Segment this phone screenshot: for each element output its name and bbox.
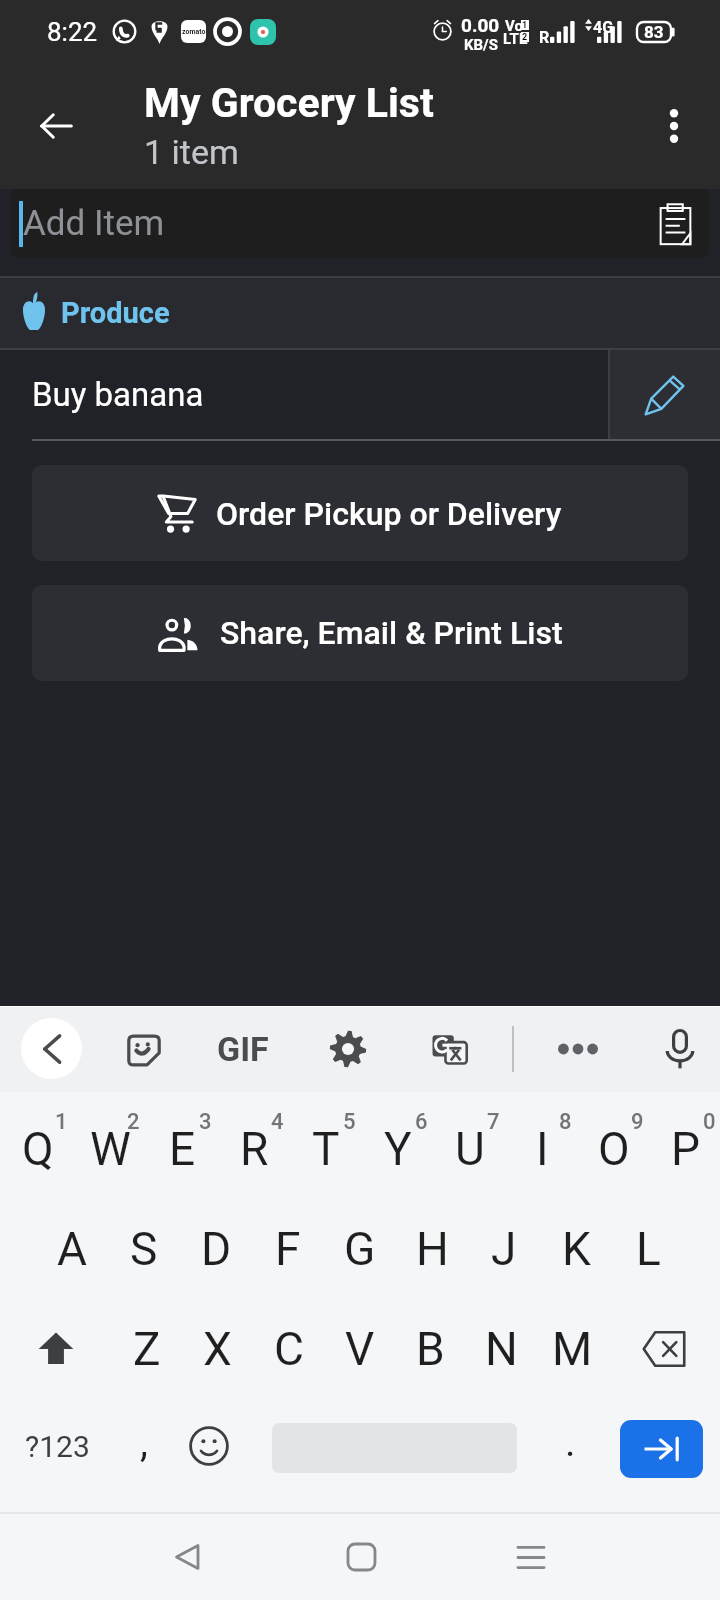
staticText: 9: [631, 1109, 644, 1135]
staticText: K: [562, 1222, 591, 1276]
staticText: O: [598, 1122, 630, 1176]
staticText: R: [240, 1122, 269, 1176]
staticText: GIF: [217, 1029, 269, 1069]
staticText: Y: [384, 1122, 412, 1176]
staticText: Vo: [505, 17, 523, 35]
button[interactable]: Back: [28, 98, 84, 154]
button[interactable]: S: [108, 1199, 180, 1299]
button[interactable]: Shift: [0, 1299, 112, 1399]
staticText: H: [416, 1222, 449, 1276]
staticText: Order Pickup or Delivery: [216, 495, 562, 533]
staticText: LTE: [503, 30, 528, 48]
staticText: T: [312, 1122, 340, 1176]
button[interactable]: V: [324, 1299, 395, 1399]
button[interactable]: Settings: [320, 1021, 376, 1077]
button[interactable]: U: [432, 1099, 504, 1199]
button[interactable]: Back: [152, 1522, 222, 1592]
button[interactable]: Stickers: [116, 1021, 172, 1077]
staticText: Q: [22, 1122, 54, 1176]
staticText: G: [344, 1222, 376, 1276]
button[interactable]: Emoji: [189, 1426, 229, 1466]
button[interactable]: D: [180, 1199, 252, 1299]
button[interactable]: R: [216, 1099, 288, 1199]
staticText: X: [203, 1322, 232, 1376]
button[interactable]: C: [253, 1299, 324, 1399]
staticText: 1 item: [144, 132, 239, 172]
button[interactable]: Produce: [0, 278, 720, 348]
button[interactable]: Home: [326, 1522, 396, 1592]
button[interactable]: Add Item: [11, 189, 709, 258]
staticText: .: [565, 1419, 576, 1466]
staticText: E: [169, 1122, 196, 1176]
staticText: U: [455, 1122, 485, 1176]
button[interactable]: A: [36, 1199, 108, 1299]
button[interactable]: N: [466, 1299, 537, 1399]
staticText: 1: [55, 1109, 68, 1135]
button[interactable]: Next: [620, 1420, 703, 1478]
button[interactable]: Backspace: [608, 1299, 720, 1399]
button[interactable]: Share, Email & Print List: [32, 585, 688, 681]
staticText: ,: [140, 1419, 148, 1466]
button[interactable]: O: [576, 1099, 648, 1199]
button[interactable]: Order Pickup or Delivery: [32, 465, 688, 561]
button[interactable]: Back: [21, 1018, 82, 1079]
button[interactable]: E: [144, 1099, 216, 1199]
button[interactable]: Y: [360, 1099, 432, 1199]
staticText: ?123: [25, 1429, 90, 1464]
button[interactable]: Voice input: [652, 1021, 708, 1077]
staticText: 1: [522, 20, 528, 30]
button[interactable]: G: [324, 1199, 396, 1299]
staticText: 0.00: [461, 14, 500, 36]
button[interactable]: Q: [0, 1099, 72, 1199]
staticText: Z: [133, 1322, 161, 1376]
button[interactable]: ?123: [13, 1399, 101, 1499]
button[interactable]: GIF: [210, 1022, 276, 1076]
button[interactable]: M: [537, 1299, 608, 1399]
staticText: V: [345, 1322, 375, 1376]
staticText: 6: [415, 1109, 428, 1135]
staticText: 83: [644, 22, 664, 42]
button[interactable]: X: [182, 1299, 253, 1399]
staticText: N: [485, 1322, 518, 1376]
button[interactable]: L: [612, 1199, 684, 1299]
button[interactable]: W: [72, 1099, 144, 1199]
button[interactable]: Recent apps: [496, 1522, 566, 1592]
button[interactable]: Buy banana: [0, 350, 608, 439]
staticText: My Grocery List: [144, 79, 434, 127]
button[interactable]: B: [395, 1299, 466, 1399]
staticText: 8: [559, 1109, 572, 1135]
button[interactable]: Z: [112, 1299, 182, 1399]
button[interactable]: More options: [550, 1021, 606, 1077]
staticText: 0: [703, 1109, 716, 1135]
button[interactable]: Edit item: [610, 350, 720, 439]
button[interactable]: More options: [646, 98, 702, 154]
staticText: J: [491, 1222, 517, 1276]
staticText: R: [539, 28, 550, 47]
button[interactable]: Translate: [422, 1021, 478, 1077]
staticText: 2: [522, 32, 528, 42]
button[interactable]: T: [288, 1099, 360, 1199]
button[interactable]: P: [648, 1099, 720, 1199]
button[interactable]: Paste from clipboard: [645, 194, 705, 254]
button[interactable]: F: [252, 1199, 324, 1299]
button[interactable]: I: [504, 1099, 576, 1199]
staticText: 2: [127, 1109, 140, 1135]
button[interactable]: H: [396, 1199, 468, 1299]
staticText: 5: [343, 1109, 356, 1135]
staticText: S: [130, 1222, 158, 1276]
staticText: Buy banana: [32, 375, 204, 414]
staticText: D: [201, 1222, 232, 1276]
button[interactable]: K: [540, 1199, 612, 1299]
staticText: C: [274, 1322, 304, 1376]
staticText: W: [90, 1122, 131, 1176]
staticText: L: [636, 1222, 661, 1276]
staticText: 3: [199, 1109, 212, 1135]
staticText: A: [57, 1222, 88, 1276]
button[interactable]: ,: [114, 1399, 174, 1499]
staticText: Add Item: [23, 203, 165, 244]
staticText: Share, Email & Print List: [220, 614, 563, 652]
button[interactable]: .: [540, 1399, 600, 1499]
button[interactable]: J: [468, 1199, 540, 1299]
staticText: KB/S: [464, 36, 498, 54]
